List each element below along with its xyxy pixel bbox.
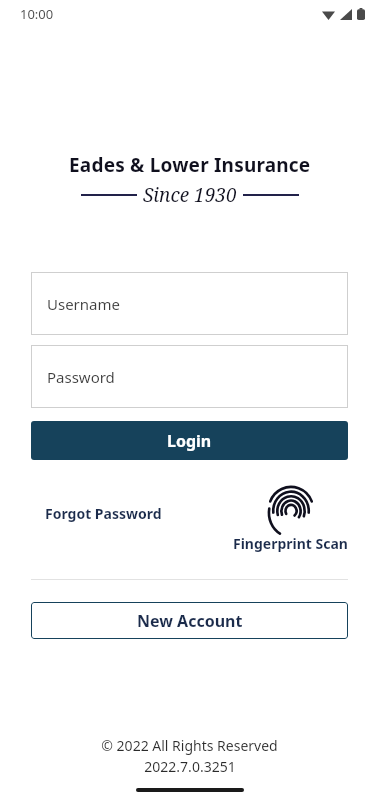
staticText: Username bbox=[47, 294, 120, 314]
staticText: Login bbox=[167, 430, 212, 452]
staticText: 10:00 bbox=[20, 5, 54, 23]
staticText: 2022.7.0.3251 bbox=[144, 757, 236, 776]
staticText: © 2022 All Rights Reserved bbox=[101, 736, 278, 755]
button[interactable]: Forgot Password bbox=[41, 500, 166, 527]
staticText: Fingerprint Scan bbox=[233, 534, 348, 553]
button[interactable]: Login bbox=[31, 421, 348, 460]
staticText: Eades & Lower Insurance bbox=[69, 152, 311, 178]
button[interactable]: Username bbox=[31, 272, 348, 335]
staticText: Password bbox=[47, 367, 115, 387]
button[interactable]: New Account bbox=[31, 602, 348, 639]
button[interactable]: Password bbox=[31, 345, 348, 408]
staticText: Forgot Password bbox=[45, 504, 162, 523]
button[interactable]: Fingerprint Scan bbox=[233, 484, 348, 553]
staticText: Since 1930 bbox=[143, 182, 237, 208]
staticText: New Account bbox=[137, 610, 243, 632]
